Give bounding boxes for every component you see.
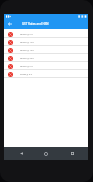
button[interactable]: Service @ 12 % <box>4 38 88 46</box>
staticText: Service @ 5 % <box>20 33 33 36</box>
button[interactable]: Home <box>37 147 55 160</box>
staticText: GST Rates and HSN <box>22 22 49 26</box>
button[interactable]: Service @ 28 % <box>4 54 88 62</box>
staticText: Service @ 12 % <box>20 41 34 44</box>
staticText: Service @ 18 % <box>20 49 34 52</box>
button[interactable]: Service @ 18 % <box>4 46 88 54</box>
staticText: Service @ 28 % <box>20 57 34 60</box>
staticText: Service @ 0 % <box>20 65 33 68</box>
button[interactable]: Recents <box>63 147 81 160</box>
button[interactable]: Service @ 0 % <box>4 62 88 70</box>
button[interactable]: Back <box>12 147 30 160</box>
button[interactable]: Goods @ 5 % <box>4 70 88 78</box>
button[interactable]: Back <box>4 19 15 29</box>
button[interactable]: Service @ 5 % <box>4 30 88 38</box>
staticText: Goods @ 5 % <box>20 73 33 76</box>
